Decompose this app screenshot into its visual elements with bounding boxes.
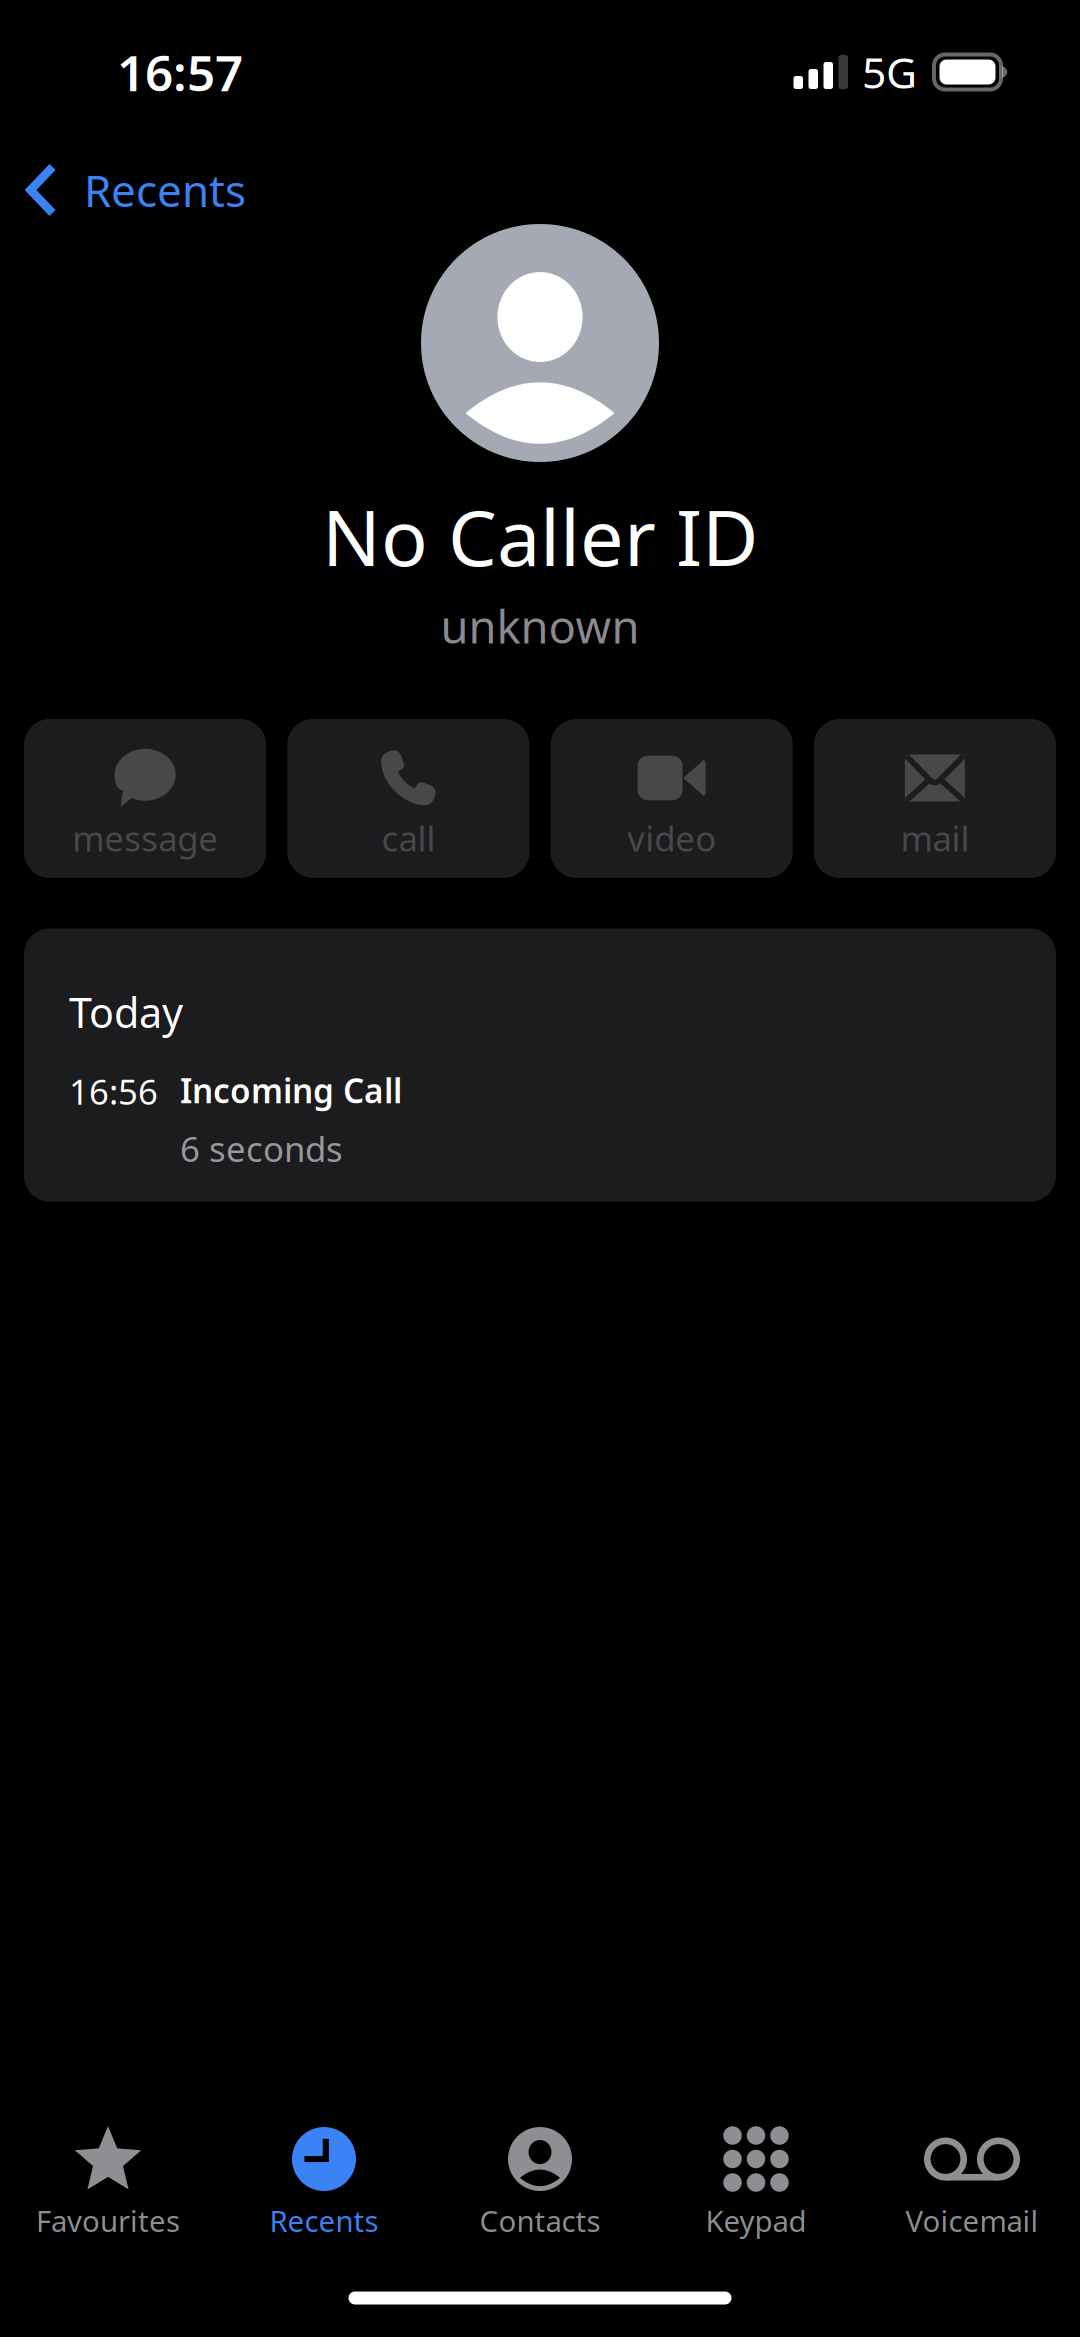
staticText: 16:56 [69,1068,158,1114]
staticText: mail [900,815,969,861]
staticText: unknown [440,596,639,656]
button[interactable]: Voicemail [864,2116,1080,2244]
button[interactable]: Recents [0,146,330,234]
staticText: video [627,815,716,861]
button[interactable]: mail [814,719,1056,878]
staticText: Contacts [479,2201,600,2240]
staticText: Favourites [36,2201,180,2240]
button[interactable]: video [550,719,793,878]
button[interactable]: message [24,719,266,878]
staticText: Recents [84,161,246,219]
staticText: Recents [269,2201,378,2240]
staticText: call [381,815,435,861]
button[interactable]: Keypad [648,2116,864,2244]
staticText: Voicemail [905,2201,1038,2240]
button[interactable]: Contacts [432,2116,648,2244]
staticText: 16:57 [117,39,243,105]
button[interactable]: Favourites [0,2116,216,2244]
staticText: 5G [862,44,917,100]
button[interactable]: call [287,719,529,878]
staticText: Keypad [705,2201,806,2240]
staticText: Today [69,984,183,1039]
staticText: message [72,815,218,861]
staticText: No Caller ID [322,485,758,587]
button[interactable]: Recents [216,2116,432,2244]
staticText: 6 seconds [180,1126,343,1172]
staticText: Incoming Call [180,1068,402,1113]
